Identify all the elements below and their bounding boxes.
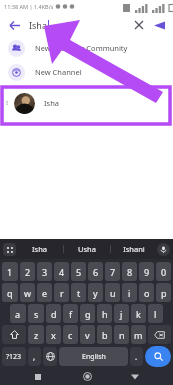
staticText: t bbox=[77, 287, 81, 299]
staticText: a bbox=[15, 308, 21, 320]
button[interactable]: 8 bbox=[122, 262, 137, 281]
staticText: q bbox=[7, 287, 13, 299]
button[interactable]: f bbox=[63, 304, 78, 323]
staticText: p bbox=[161, 287, 167, 299]
staticText: 6 bbox=[93, 266, 99, 278]
button[interactable]: x bbox=[46, 325, 61, 344]
button[interactable]: 2 bbox=[20, 262, 35, 281]
button[interactable]: m bbox=[131, 325, 146, 344]
staticText: , bbox=[33, 351, 36, 362]
button[interactable]: Clear bbox=[130, 16, 148, 34]
staticText: j bbox=[120, 308, 123, 320]
staticText: z bbox=[34, 329, 39, 341]
button[interactable]: 0 bbox=[156, 262, 171, 281]
button[interactable]: Recent apps bbox=[28, 368, 48, 385]
button[interactable]: I bbox=[0, 89, 173, 117]
button[interactable]: Back bbox=[125, 368, 145, 385]
button[interactable]: 7 bbox=[105, 262, 120, 281]
button[interactable]: Period bbox=[130, 347, 143, 366]
button[interactable]: Backspace bbox=[148, 325, 171, 344]
button[interactable]: a bbox=[10, 304, 26, 323]
button[interactable]: u bbox=[105, 283, 120, 302]
button[interactable]: l bbox=[148, 304, 163, 323]
button[interactable]: v bbox=[80, 325, 95, 344]
staticText: i bbox=[128, 287, 131, 299]
button[interactable]: Search bbox=[145, 346, 171, 367]
button[interactable]: New Channel bbox=[0, 60, 173, 84]
button[interactable]: Usha bbox=[64, 239, 110, 259]
staticText: English bbox=[82, 352, 106, 362]
button[interactable]: 9 bbox=[139, 262, 154, 281]
staticText: New Channel bbox=[35, 67, 82, 77]
button[interactable]: 1 bbox=[2, 262, 18, 281]
staticText: r bbox=[60, 287, 64, 299]
staticText: l bbox=[154, 308, 157, 320]
staticText: I bbox=[6, 99, 9, 107]
button[interactable]: e bbox=[37, 283, 52, 302]
button[interactable]: 5 bbox=[71, 262, 86, 281]
staticText: o bbox=[144, 287, 150, 299]
button[interactable]: Ishani bbox=[111, 239, 157, 259]
staticText: New Group or Community bbox=[35, 43, 128, 53]
button[interactable]: z bbox=[28, 325, 44, 344]
staticText: 3 bbox=[42, 266, 48, 278]
button[interactable]: Change language bbox=[43, 347, 57, 366]
staticText: 11:38 AM | 1.4KB/s bbox=[4, 3, 54, 10]
button[interactable]: New Group or Community bbox=[0, 36, 173, 60]
button[interactable]: ?123 bbox=[2, 347, 26, 366]
button[interactable]: English bbox=[59, 347, 128, 366]
staticText: Isha bbox=[29, 19, 47, 31]
button[interactable]: Back bbox=[5, 16, 23, 34]
button[interactable]: Voice search bbox=[150, 16, 168, 34]
button[interactable]: c bbox=[63, 325, 78, 344]
button[interactable]: b bbox=[97, 325, 112, 344]
staticText: 4 bbox=[59, 266, 65, 278]
button[interactable]: 4 bbox=[54, 262, 69, 281]
button[interactable]: s bbox=[28, 304, 44, 323]
button[interactable]: t bbox=[71, 283, 86, 302]
button[interactable]: Isha bbox=[16, 239, 63, 259]
button[interactable]: w bbox=[20, 283, 35, 302]
staticText: 5 bbox=[76, 266, 82, 278]
button[interactable]: y bbox=[88, 283, 103, 302]
staticText: v bbox=[85, 329, 90, 341]
button[interactable]: d bbox=[46, 304, 61, 323]
button[interactable]: n bbox=[114, 325, 129, 344]
staticText: c bbox=[68, 329, 73, 341]
staticText: u bbox=[110, 287, 116, 299]
staticText: 2 bbox=[25, 266, 31, 278]
staticText: k bbox=[136, 308, 141, 320]
staticText: w bbox=[24, 287, 32, 299]
staticText: d bbox=[51, 308, 57, 320]
staticText: e bbox=[42, 287, 48, 299]
staticText: s bbox=[34, 308, 39, 320]
button[interactable]: h bbox=[97, 304, 112, 323]
staticText: 1 bbox=[7, 266, 13, 278]
staticText: Ishani bbox=[123, 244, 145, 254]
button[interactable]: p bbox=[156, 283, 171, 302]
staticText: 0 bbox=[161, 266, 167, 278]
staticText: Isha bbox=[44, 98, 59, 108]
staticText: b bbox=[102, 329, 108, 341]
button[interactable]: Shift bbox=[2, 325, 26, 344]
staticText: 8 bbox=[127, 266, 133, 278]
button[interactable]: i bbox=[122, 283, 137, 302]
staticText: y bbox=[93, 287, 98, 299]
button[interactable]: Comma bbox=[28, 347, 41, 366]
button[interactable]: 6 bbox=[88, 262, 103, 281]
button[interactable]: q bbox=[2, 283, 18, 302]
button[interactable]: Home bbox=[77, 368, 97, 385]
button[interactable]: Emoji keyboard bbox=[3, 243, 16, 256]
button[interactable]: k bbox=[131, 304, 146, 323]
button[interactable]: j bbox=[114, 304, 129, 323]
button[interactable]: o bbox=[139, 283, 154, 302]
button[interactable]: 3 bbox=[37, 262, 52, 281]
button[interactable]: g bbox=[80, 304, 95, 323]
button[interactable]: Voice input bbox=[157, 243, 170, 256]
staticText: g bbox=[85, 308, 91, 320]
staticText: . bbox=[135, 351, 138, 362]
staticText: Usha bbox=[78, 244, 96, 254]
button[interactable]: r bbox=[54, 283, 69, 302]
staticText: f bbox=[69, 308, 73, 320]
staticText: ?123 bbox=[6, 352, 22, 362]
